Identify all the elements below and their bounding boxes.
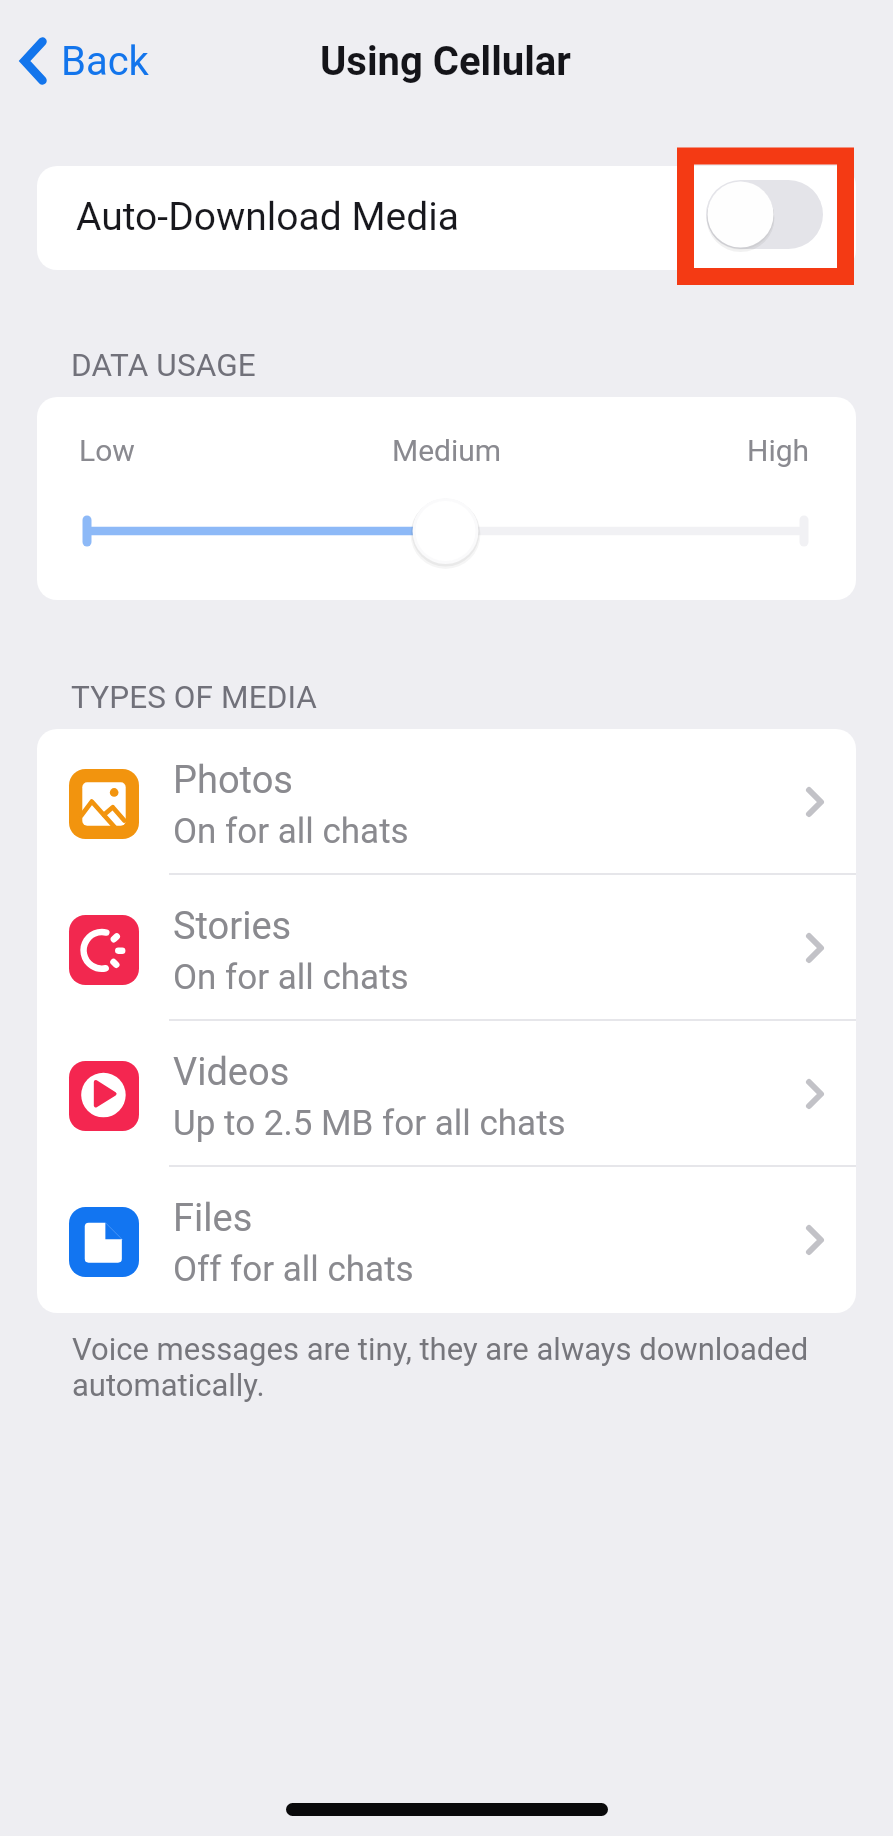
staticText: Photos — [173, 758, 293, 803]
staticText: DATA USAGE — [71, 347, 256, 384]
staticText: Off for all chats — [173, 1249, 414, 1290]
staticText: Up to 2.5 MB for all chats — [173, 1103, 566, 1144]
button[interactable]: Back — [13, 28, 161, 94]
staticText: TYPES OF MEDIA — [71, 679, 318, 716]
button[interactable]: Auto-Download Media toggle, off — [706, 180, 823, 249]
staticText: On for all chats — [173, 811, 409, 852]
staticText: High — [747, 433, 810, 468]
staticText: Stories — [173, 904, 292, 949]
staticText: Voice messages are tiny, they are always… — [72, 1331, 838, 1403]
button[interactable]: Files — [37, 1167, 856, 1313]
staticText: Files — [173, 1196, 253, 1241]
staticText: Medium — [392, 433, 502, 468]
staticText: Videos — [173, 1050, 290, 1095]
staticText: Auto-Download Media — [76, 194, 459, 240]
button[interactable]: Auto-Download Media — [37, 166, 856, 270]
button[interactable]: Photos — [37, 729, 856, 875]
button[interactable]: Videos — [37, 1021, 856, 1167]
staticText: Back — [61, 38, 149, 85]
staticText: Using Cellular — [320, 38, 571, 85]
staticText: Low — [79, 433, 135, 468]
button[interactable]: Data usage slider, Medium — [37, 486, 856, 576]
staticText: On for all chats — [173, 957, 409, 998]
button[interactable]: Stories — [37, 875, 856, 1021]
